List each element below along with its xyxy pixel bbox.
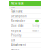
staticText: Never <box>32 29 39 32</box>
button[interactable]: Notes <box>9 48 41 50</box>
staticText: Due date <box>11 24 24 27</box>
staticText: List <box>11 38 15 42</box>
button[interactable]: New Task <box>9 1 41 6</box>
staticText: Task name <box>11 10 23 13</box>
button[interactable]: Reminder <box>9 19 41 23</box>
staticText: Notes <box>11 48 19 50</box>
staticText: Reminder <box>11 19 25 23</box>
button[interactable]: Task name <box>9 9 41 14</box>
staticText: Priority <box>11 34 21 37</box>
button[interactable]: List <box>9 38 41 42</box>
staticText: New Task <box>11 2 24 5</box>
button[interactable]: Attachment <box>9 43 41 47</box>
staticText: Repeat <box>11 29 21 32</box>
button[interactable]: Description <box>9 14 41 18</box>
staticText: Attachment <box>11 43 26 47</box>
button[interactable]: Priority <box>9 33 41 38</box>
staticText: Description <box>11 14 27 18</box>
button[interactable]: Repeat <box>9 28 41 33</box>
button[interactable]: Due date <box>9 24 41 28</box>
staticText: Today <box>32 24 39 27</box>
staticText: Details <box>11 7 15 8</box>
